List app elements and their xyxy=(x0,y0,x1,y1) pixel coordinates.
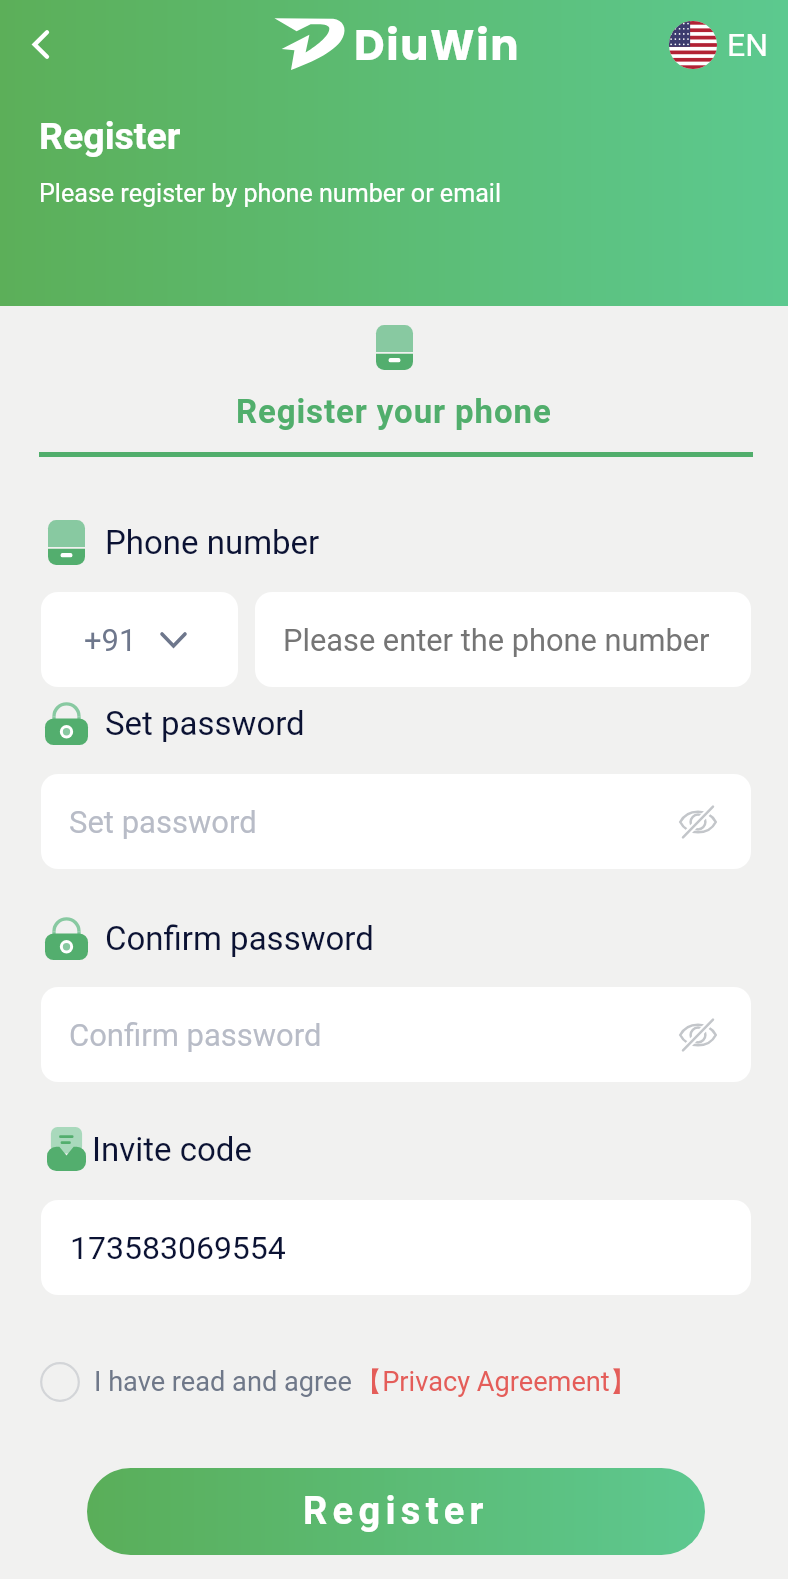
button[interactable]: Register xyxy=(87,1468,705,1555)
staticText: Register xyxy=(303,1489,489,1534)
staticText: Register your phone xyxy=(236,392,552,431)
staticText: Set password xyxy=(69,804,257,840)
button[interactable]: Agree to terms xyxy=(38,1360,82,1404)
button[interactable]: Please enter the phone number xyxy=(255,592,751,687)
staticText: Confirm password xyxy=(69,1017,322,1053)
button[interactable]: +91 xyxy=(41,592,238,687)
button[interactable]: Show password xyxy=(676,800,720,844)
staticText: Register xyxy=(39,114,181,158)
staticText: Please register by phone number or email xyxy=(39,179,502,208)
staticText: I have read and agree xyxy=(94,1366,352,1398)
staticText: EN xyxy=(727,26,769,64)
staticText: Invite code xyxy=(92,1130,252,1169)
staticText: DiuWin xyxy=(354,16,521,75)
button[interactable]: Back xyxy=(12,14,72,74)
staticText: +91 xyxy=(84,622,137,658)
staticText: Phone number xyxy=(105,523,320,562)
button[interactable]: Show password xyxy=(676,1013,720,1057)
staticText: 173583069554 xyxy=(70,1229,286,1267)
button[interactable]: EN xyxy=(669,21,769,69)
button[interactable]: Confirm password xyxy=(41,987,751,1082)
staticText: Confirm password xyxy=(105,919,374,958)
staticText: Please enter the phone number xyxy=(283,622,710,658)
staticText: Set password xyxy=(105,704,305,743)
button[interactable]: Set password xyxy=(41,774,751,869)
button[interactable]: 173583069554 xyxy=(41,1200,751,1295)
button[interactable]: 【Privacy Agreement】 xyxy=(355,1365,637,1399)
